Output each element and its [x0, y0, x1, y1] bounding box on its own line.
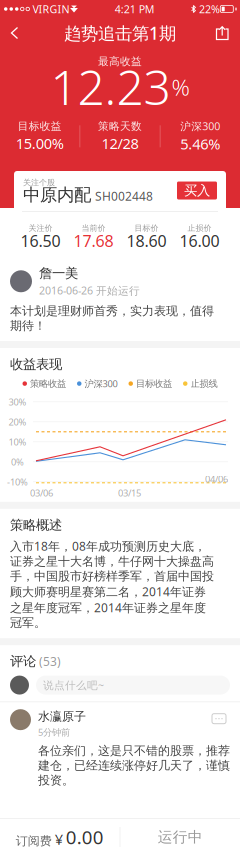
staticText: 沪深300: [84, 377, 117, 390]
staticText: 当前价: [81, 223, 105, 233]
staticText: 中原内配: [23, 184, 91, 206]
staticText: 策略天数: [98, 119, 142, 133]
staticText: 20%: [8, 416, 26, 428]
staticText: 订阅费: [16, 834, 52, 848]
staticText: 04/06: [205, 473, 228, 485]
staticText: 目标价: [134, 223, 158, 233]
staticText: 本计划是理财师首秀，实力表现，值得期待！: [10, 303, 214, 333]
staticText: 说点什么吧~: [43, 678, 104, 692]
staticText: 最高收益: [98, 55, 142, 68]
staticText: 0%: [11, 456, 24, 468]
staticText: 目标收益: [18, 119, 62, 133]
button[interactable]: Reply: [208, 709, 230, 728]
staticText: SH002448: [95, 188, 153, 204]
staticText: 2016-06-26 开始运行: [39, 283, 140, 298]
staticText: 12.23: [50, 55, 170, 118]
staticText: 22%: [196, 2, 220, 16]
staticText: 16.50: [20, 230, 60, 251]
staticText: 策略概述: [10, 517, 62, 533]
button[interactable]: Share: [207, 18, 238, 47]
staticText: 10%: [8, 436, 26, 448]
staticText: 目标收益: [136, 378, 172, 389]
staticText: 入市18年，08年成功预测历史大底，证券之星十大名博，牛仔网十大操盘高手，中国股…: [10, 538, 214, 630]
button[interactable]: 买入: [177, 181, 217, 199]
button[interactable]: 说点什么吧~: [36, 676, 230, 695]
staticText: 5.46%: [180, 134, 220, 154]
staticText: 运行中: [158, 828, 203, 846]
staticText: 18.60: [126, 230, 166, 251]
staticText: 评论: [10, 653, 36, 670]
staticText: VIRGIN: [29, 2, 69, 16]
staticText: 止损价: [187, 223, 211, 233]
staticText: 12/28: [101, 134, 138, 153]
staticText: 趋势追击第1期: [64, 21, 176, 44]
staticText: 30%: [8, 396, 26, 408]
staticText: 收益表现: [10, 356, 62, 372]
staticText: 策略收益: [30, 378, 66, 389]
staticText: ¥: [55, 829, 63, 849]
staticText: 詹一美: [39, 265, 78, 281]
staticText: 沪深300: [180, 119, 220, 133]
staticText: 03/06: [30, 487, 53, 499]
staticText: 5分钟前: [38, 726, 70, 738]
staticText: 买入: [184, 182, 210, 199]
staticText: 关注价: [28, 223, 52, 233]
staticText: 各位亲们，这是只不错的股票，推荐建仓，已经连续涨停好几天了，谨慎投资。: [38, 743, 230, 787]
staticText: 03/15: [118, 487, 141, 499]
staticText: 16.00: [179, 230, 219, 251]
staticText: 止损线: [190, 378, 217, 389]
button[interactable]: Back: [2, 18, 28, 48]
staticText: 17.68: [73, 230, 113, 251]
staticText: (53): [39, 653, 61, 669]
staticText: 15.00%: [16, 134, 64, 153]
button[interactable]: 运行中: [120, 818, 240, 856]
staticText: -10%: [7, 476, 28, 488]
staticText: 4:21 PM: [115, 2, 155, 16]
staticText: 0.00: [66, 825, 104, 849]
staticText: 水瀛原子: [38, 709, 86, 724]
staticText: %: [171, 72, 189, 102]
staticText: 关注个股: [23, 178, 55, 187]
